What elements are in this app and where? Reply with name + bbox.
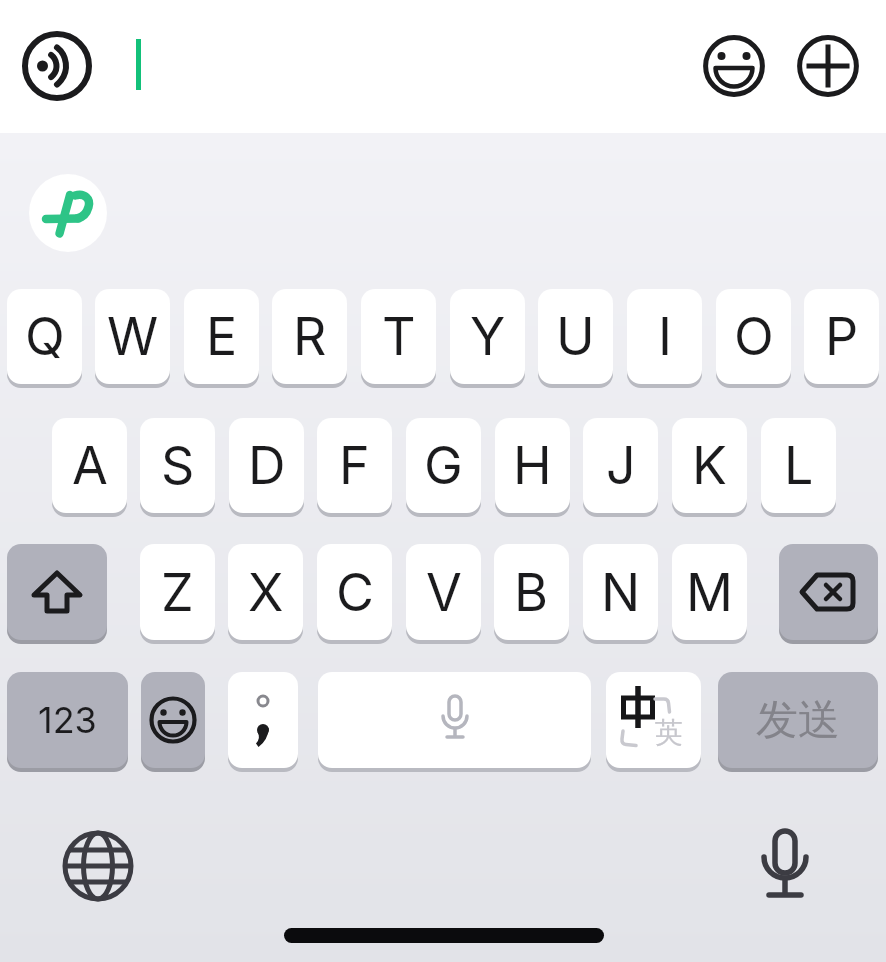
button[interactable]: L [761, 418, 836, 513]
button[interactable]: V [406, 544, 481, 640]
button[interactable]: U [538, 289, 613, 384]
staticText: S [161, 434, 195, 497]
button[interactable]: J [583, 418, 658, 513]
button[interactable]: W [95, 289, 170, 384]
staticText: P [825, 305, 859, 368]
button[interactable] [318, 672, 591, 768]
button[interactable]: T [361, 289, 436, 384]
button[interactable] [141, 672, 205, 768]
staticText: W [107, 305, 159, 368]
staticText: X [248, 561, 284, 624]
button[interactable] [29, 174, 107, 252]
staticText: F [339, 434, 370, 497]
staticText: M [686, 561, 733, 624]
staticText: 123 [38, 698, 97, 742]
button[interactable] [797, 35, 859, 97]
staticText: 英 [655, 715, 683, 750]
button[interactable]: Y [450, 289, 525, 384]
staticText: L [784, 434, 814, 497]
button[interactable] [22, 31, 92, 101]
button[interactable]: S [140, 418, 215, 513]
staticText: U [556, 305, 595, 368]
button[interactable] [228, 672, 298, 768]
button[interactable]: Q [7, 289, 82, 384]
button[interactable]: E [184, 289, 259, 384]
button[interactable]: X [228, 544, 303, 640]
button[interactable]: 123 [7, 672, 128, 768]
staticText: V [426, 561, 462, 624]
staticText: H [513, 434, 552, 497]
staticText: Y [470, 305, 506, 368]
button[interactable]: 发送 [718, 672, 878, 768]
button[interactable]: A [52, 418, 127, 513]
staticText: A [72, 434, 108, 497]
button[interactable]: I [627, 289, 702, 384]
button[interactable] [760, 828, 810, 900]
staticText: Z [161, 561, 194, 624]
button[interactable]: Z [140, 544, 215, 640]
button[interactable]: O [716, 289, 791, 384]
button[interactable]: G [406, 418, 481, 513]
button[interactable] [779, 544, 878, 640]
staticText: D [248, 434, 286, 497]
button[interactable] [703, 35, 765, 97]
button[interactable] [60, 828, 136, 904]
button[interactable]: H [495, 418, 570, 513]
staticText: T [382, 305, 416, 368]
button[interactable]: N [583, 544, 658, 640]
staticText: K [692, 434, 727, 497]
button[interactable]: K [672, 418, 747, 513]
button[interactable]: 英 [606, 672, 701, 768]
staticText: I [658, 305, 672, 368]
button[interactable]: C [317, 544, 392, 640]
staticText: E [206, 305, 238, 368]
button[interactable]: R [272, 289, 347, 384]
staticText: G [424, 434, 463, 497]
staticText: 发送 [756, 694, 840, 747]
staticText: O [734, 305, 774, 368]
staticText: N [601, 561, 641, 624]
button[interactable]: P [804, 289, 879, 384]
staticText: C [336, 561, 374, 624]
staticText: J [606, 434, 636, 497]
staticText: R [293, 305, 327, 368]
button[interactable] [7, 544, 107, 640]
button[interactable]: F [317, 418, 392, 513]
staticText: Q [25, 305, 65, 368]
button[interactable]: B [494, 544, 569, 640]
button[interactable]: M [672, 544, 747, 640]
button[interactable]: D [229, 418, 304, 513]
staticText: B [514, 561, 549, 624]
